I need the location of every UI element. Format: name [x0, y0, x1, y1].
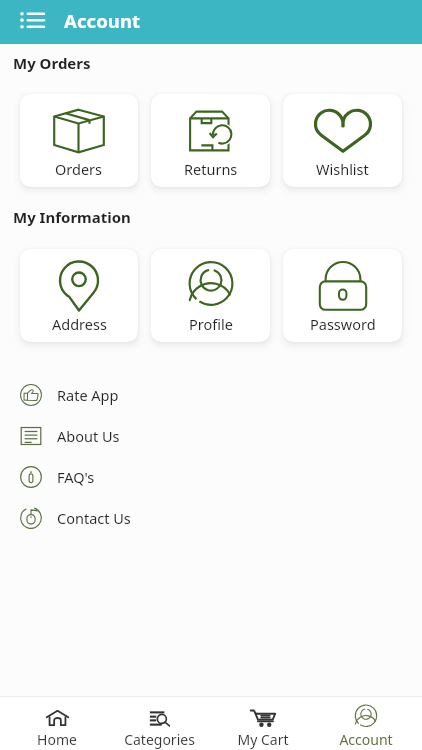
button[interactable]: Home: [5, 697, 108, 750]
staticText: Account: [64, 8, 141, 33]
button[interactable]: Orders: [20, 94, 138, 187]
button[interactable]: Password: [283, 249, 402, 342]
button[interactable]: About Us: [0, 415, 422, 456]
button[interactable]: Account: [314, 697, 417, 750]
button[interactable]: Rate App: [0, 374, 422, 415]
staticText: My Cart: [237, 730, 289, 749]
staticText: Wishlist: [316, 159, 369, 179]
staticText: Categories: [124, 730, 195, 749]
staticText: Password: [310, 314, 376, 334]
staticText: Profile: [189, 314, 233, 334]
staticText: Returns: [184, 159, 238, 179]
button[interactable]: Profile: [151, 249, 270, 342]
staticText: Contact Us: [57, 508, 131, 528]
button[interactable]: Wishlist: [283, 94, 402, 187]
staticText: Address: [52, 314, 107, 334]
button[interactable]: Menu: [19, 5, 48, 34]
button[interactable]: FAQ's: [0, 456, 422, 497]
button[interactable]: Categories: [108, 697, 211, 750]
staticText: About Us: [57, 426, 120, 446]
button[interactable]: Contact Us: [0, 497, 422, 538]
staticText: Orders: [55, 159, 103, 179]
staticText: FAQ's: [57, 467, 95, 487]
staticText: Home: [37, 730, 77, 749]
staticText: Account: [339, 730, 393, 749]
staticText: Rate App: [57, 385, 119, 405]
staticText: My Information: [13, 207, 131, 227]
staticText: My Orders: [13, 53, 91, 73]
button[interactable]: My Cart: [211, 697, 314, 750]
button[interactable]: Address: [20, 249, 138, 342]
button[interactable]: Returns: [151, 94, 270, 187]
